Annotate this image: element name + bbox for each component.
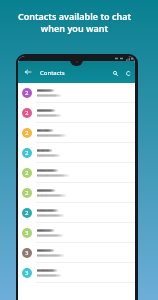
button[interactable]: 2 xyxy=(18,103,135,123)
staticText: 2 xyxy=(25,149,29,157)
button[interactable]: Back xyxy=(18,61,38,83)
button[interactable]: 2 xyxy=(18,143,135,163)
button[interactable]: 3 xyxy=(18,263,135,283)
button[interactable]: 2 xyxy=(18,83,135,103)
button[interactable]: 2 xyxy=(18,203,135,223)
button[interactable]: 2 xyxy=(18,183,135,203)
staticText: 3 xyxy=(25,229,29,237)
staticText: 2 xyxy=(25,129,29,137)
button[interactable]: Search xyxy=(109,61,122,83)
button[interactable]: 2 xyxy=(18,123,135,143)
staticText: 2 xyxy=(25,169,29,177)
staticText: 2 xyxy=(25,189,29,197)
button[interactable]: 3 xyxy=(18,243,135,263)
staticText: 2 xyxy=(25,89,29,97)
staticText: 3 xyxy=(25,249,29,257)
staticText: 2 xyxy=(25,209,29,217)
button[interactable]: 2 xyxy=(18,163,135,183)
staticText: 3 xyxy=(25,269,29,277)
staticText: Contacts xyxy=(40,69,65,77)
button[interactable]: Refresh xyxy=(122,61,135,83)
staticText: Contacts available to chat when you want xyxy=(0,10,149,35)
staticText: 2 xyxy=(25,109,29,117)
button[interactable]: 3 xyxy=(18,223,135,243)
